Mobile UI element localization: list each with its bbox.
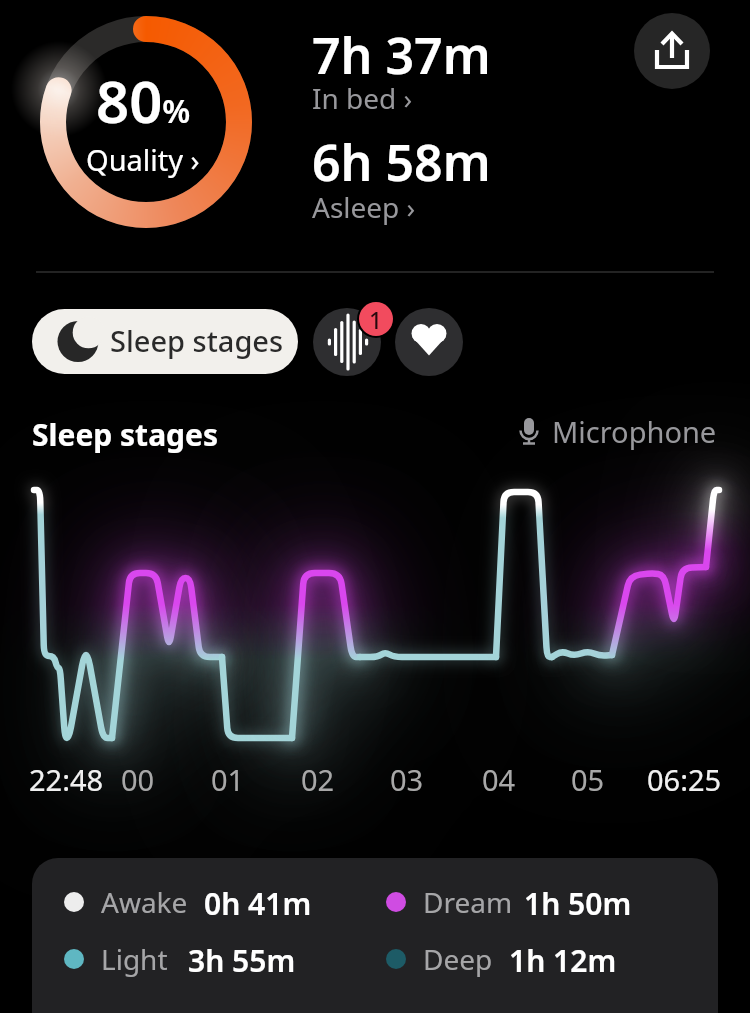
staticText: 1h 12m (509, 940, 617, 981)
staticText: 22:48 (29, 760, 104, 799)
staticText: 3h 55m (188, 940, 296, 981)
staticText: 0h 41m (204, 883, 312, 924)
staticText: 03 (390, 760, 424, 799)
staticText: 6h 58m (312, 128, 491, 196)
button[interactable]: In bed › (312, 79, 413, 117)
button[interactable]: Microphone (0, 412, 717, 451)
button[interactable] (634, 13, 710, 89)
staticText: Awake (101, 883, 188, 921)
staticText: 01 (211, 760, 245, 799)
staticText: Light (101, 940, 168, 978)
button[interactable]: Sleep stages (32, 309, 298, 374)
staticText: 00 (121, 760, 155, 799)
staticText: 7h 37m (312, 21, 491, 89)
staticText: Sleep stages (32, 414, 219, 455)
button[interactable] (395, 308, 463, 376)
staticText: 06:25 (647, 760, 722, 799)
button[interactable]: Awake (32, 858, 718, 1013)
staticText: 1 (369, 304, 383, 335)
staticText: 04 (482, 760, 516, 799)
staticText: Deep (423, 940, 493, 978)
button[interactable] (313, 308, 381, 376)
staticText: 02 (301, 760, 335, 799)
staticText: Microphone (552, 412, 717, 451)
button[interactable]: 80% (38, 14, 254, 230)
staticText: 80% (96, 61, 191, 140)
staticText: Dream (423, 883, 513, 921)
staticText: 05 (571, 760, 605, 799)
button[interactable]: Asleep › (312, 188, 416, 226)
staticText: Quality › (86, 140, 200, 179)
staticText: 1h 50m (524, 883, 632, 924)
staticText: Sleep stages (110, 321, 284, 360)
